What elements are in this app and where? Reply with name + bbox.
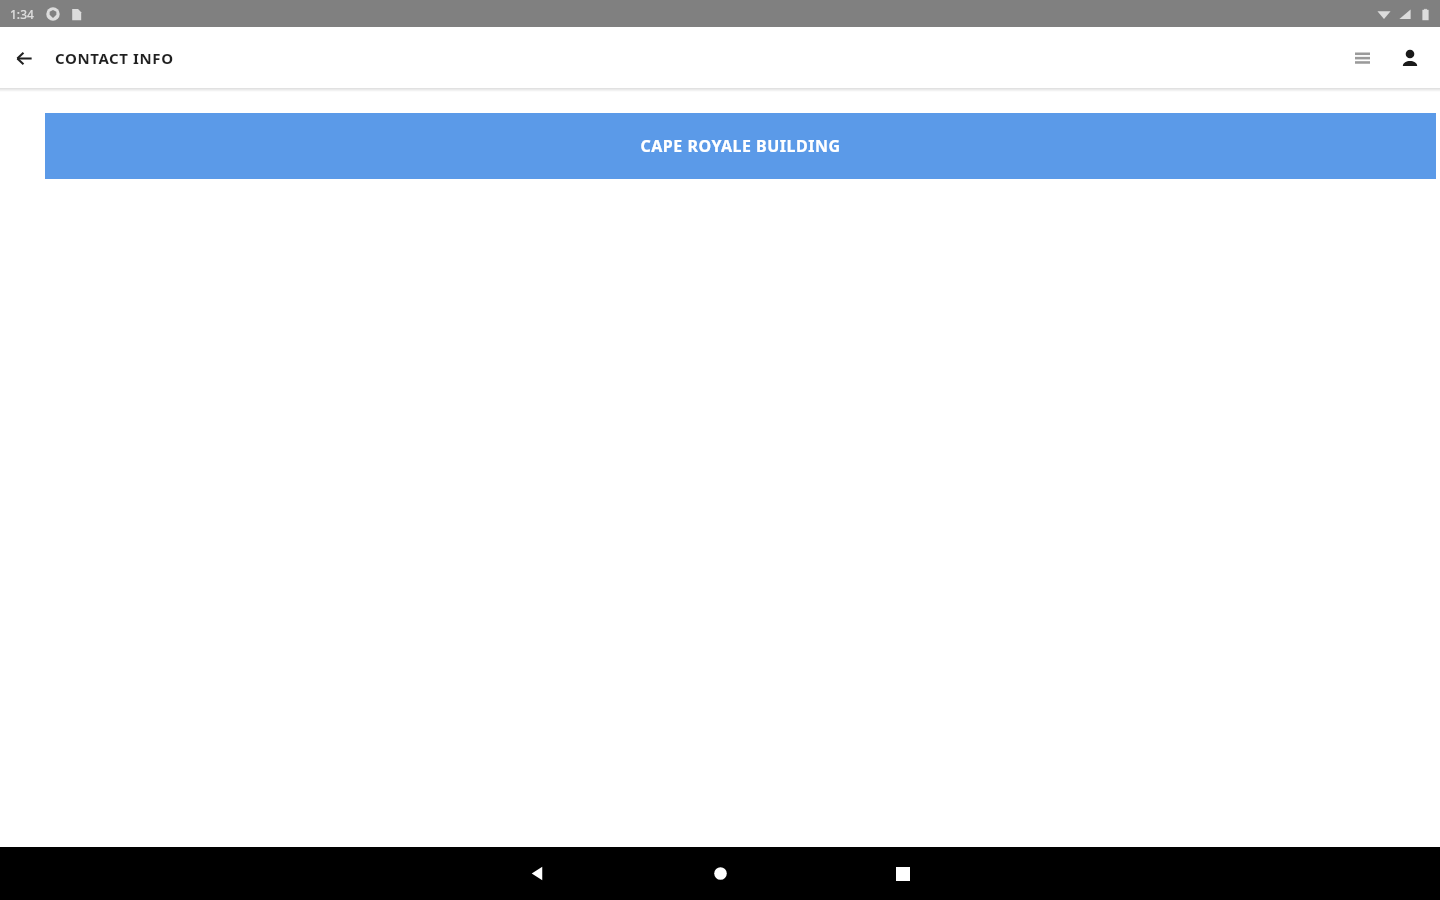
staticText: CONTACT INFO [55,48,174,68]
button[interactable]: Recent apps [858,847,948,900]
button[interactable]: Back [492,847,582,900]
button[interactable]: Account [1390,38,1430,78]
staticText: 1:34 [10,6,34,22]
button[interactable]: List [1340,36,1384,80]
button[interactable]: Back [8,42,40,74]
staticText: CAPE ROYALE BUILDING [640,135,841,157]
button[interactable]: CAPE ROYALE BUILDING [45,113,1436,179]
button[interactable]: Home [675,847,765,900]
